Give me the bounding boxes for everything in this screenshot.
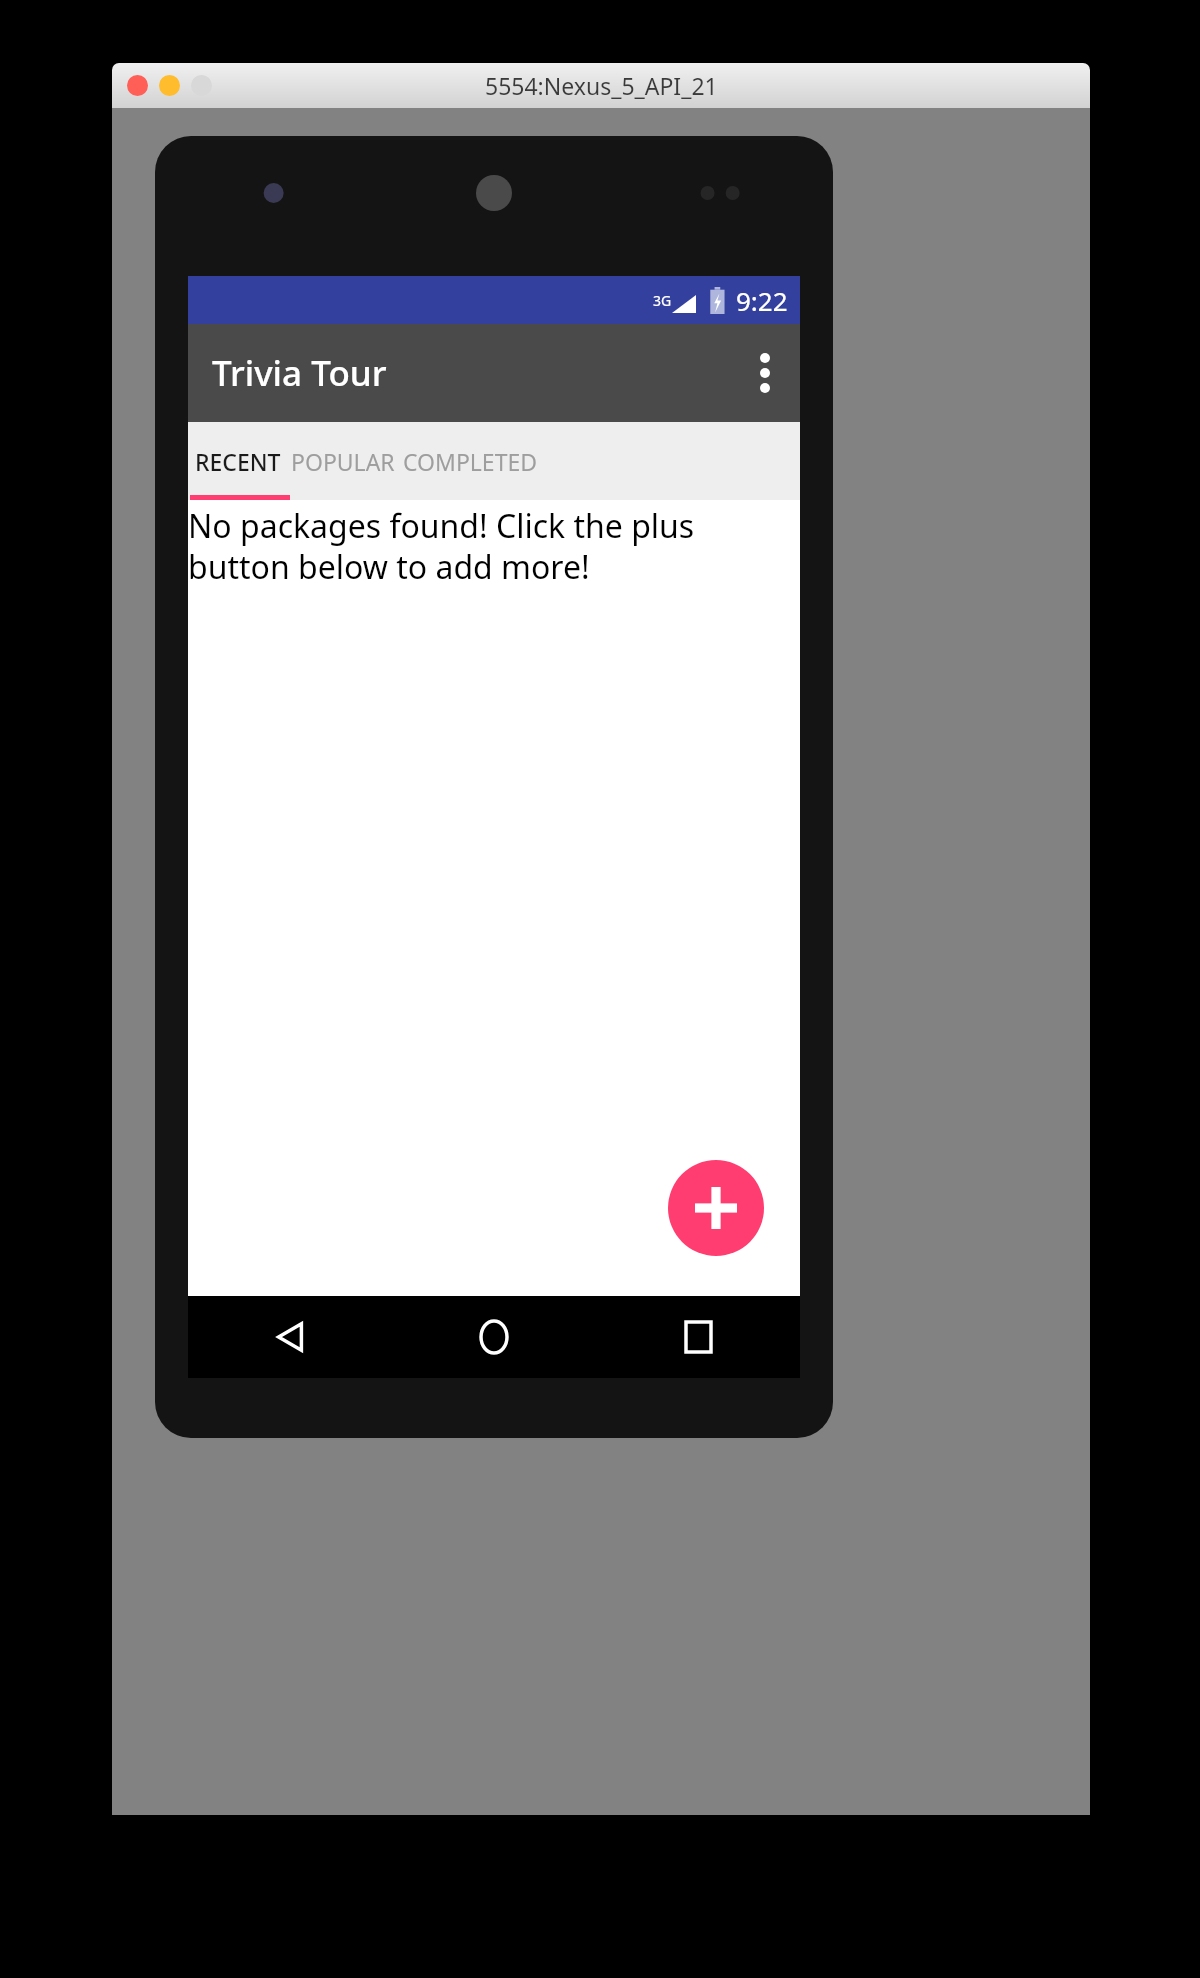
button[interactable]: Zoom <box>191 75 212 96</box>
button[interactable]: Back <box>188 1296 392 1378</box>
staticText: COMPLETED <box>403 446 538 477</box>
button[interactable]: Close <box>127 75 148 96</box>
button[interactable]: Home <box>392 1296 596 1378</box>
button[interactable]: Recents <box>596 1296 800 1378</box>
button[interactable]: Add package <box>668 1160 764 1256</box>
staticText: Trivia Tour <box>212 349 387 397</box>
button[interactable]: POPULAR <box>288 422 398 500</box>
staticText: RECENT <box>195 446 281 477</box>
button[interactable]: RECENT <box>188 422 288 500</box>
staticText: 5554:Nexus_5_API_21 <box>485 70 718 101</box>
staticText: 3G <box>653 291 672 310</box>
staticText: No packages found! Click the plus button… <box>188 504 758 589</box>
button[interactable]: More options <box>730 324 800 422</box>
button[interactable]: COMPLETED <box>398 422 543 500</box>
button[interactable]: Minimize <box>159 75 180 96</box>
staticText: 9:22 <box>736 283 788 318</box>
staticText: POPULAR <box>291 446 395 477</box>
